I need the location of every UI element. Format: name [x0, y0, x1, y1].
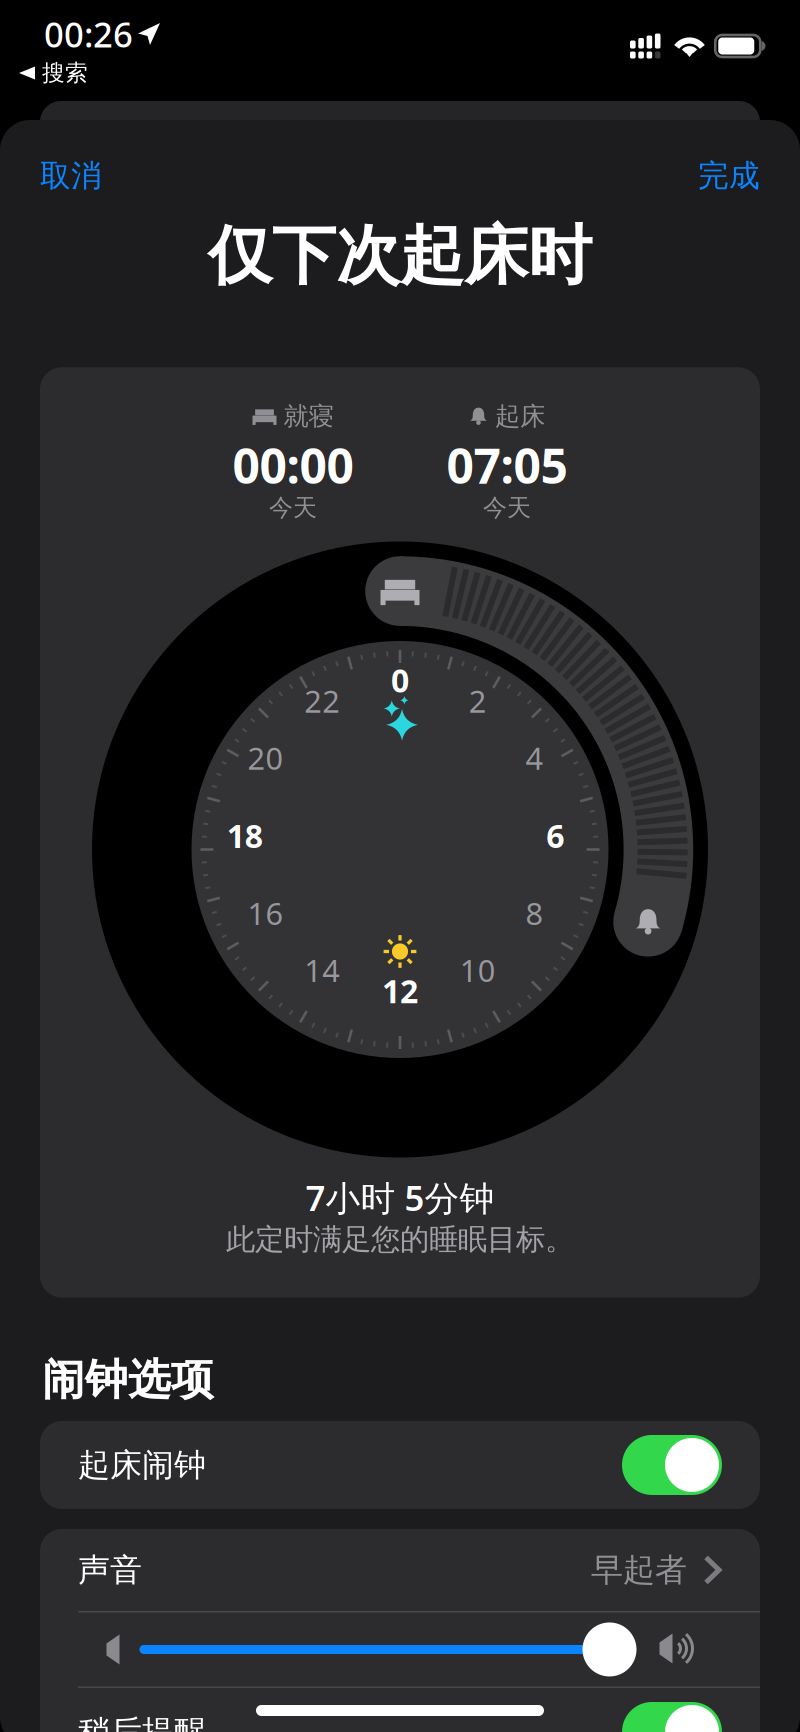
staticText: 起床 [495, 401, 545, 432]
staticText: 18 [227, 814, 263, 857]
staticText: 0 [391, 659, 409, 701]
staticText: 声音 [78, 1550, 142, 1590]
staticText: 此定时满足您的睡眠目标。 [226, 1221, 574, 1257]
staticText: 7小时 5分钟 [305, 1174, 494, 1220]
staticText: 稍后提醒 [78, 1712, 206, 1732]
staticText: 今天 [269, 493, 317, 522]
staticText: 07:05 [446, 433, 567, 497]
staticText: 10 [460, 950, 496, 990]
button[interactable]: 完成 [692, 149, 766, 203]
staticText: 搜索 [42, 59, 88, 87]
staticText: 20 [247, 737, 283, 778]
button[interactable]: 稍后提醒 [40, 1688, 760, 1732]
button[interactable]: 起床闹钟 [40, 1421, 760, 1509]
staticText: 00:00 [232, 433, 353, 497]
staticText: 22 [304, 681, 340, 721]
staticText: 6 [546, 814, 564, 857]
staticText: 4 [525, 737, 543, 778]
button[interactable]: 声音 [40, 1529, 760, 1611]
staticText: 就寝 [283, 401, 333, 432]
staticText: 00:26 [44, 11, 133, 57]
staticText: 闹钟选项 [42, 1354, 214, 1406]
staticText: 16 [247, 893, 283, 933]
staticText: 2 [469, 681, 487, 721]
staticText: 仅下次起床时 [208, 217, 592, 295]
staticText: 今天 [483, 493, 531, 522]
staticText: 取消 [40, 157, 102, 195]
staticText: 14 [304, 950, 340, 990]
staticText: 早起者 [591, 1550, 687, 1590]
staticText: 起床闹钟 [78, 1445, 206, 1485]
staticText: 12 [382, 970, 418, 1012]
staticText: 完成 [698, 157, 760, 195]
button[interactable]: 取消 [34, 149, 108, 203]
staticText: 8 [525, 893, 543, 933]
